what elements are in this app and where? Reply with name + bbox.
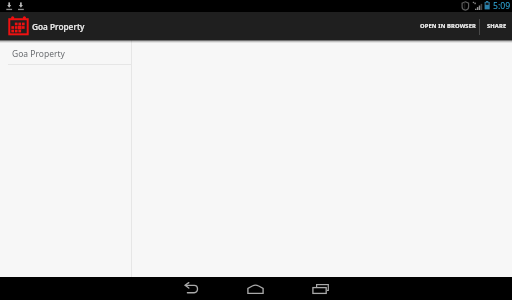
staticText: SHARE: [487, 22, 507, 30]
staticText: 5:09: [493, 0, 511, 12]
button[interactable]: SHARE: [480, 12, 512, 40]
button[interactable]: Goa Property: [0, 40, 131, 64]
button[interactable]: OPEN IN BROWSER: [410, 12, 479, 40]
staticText: Goa Property: [32, 21, 85, 32]
button[interactable]: Back: [166, 277, 218, 300]
button[interactable]: Home: [230, 277, 282, 300]
staticText: Goa Property: [12, 48, 65, 60]
button[interactable]: App icon: [8, 15, 29, 37]
button[interactable]: Recent apps: [294, 277, 346, 300]
staticText: OPEN IN BROWSER: [420, 22, 476, 30]
